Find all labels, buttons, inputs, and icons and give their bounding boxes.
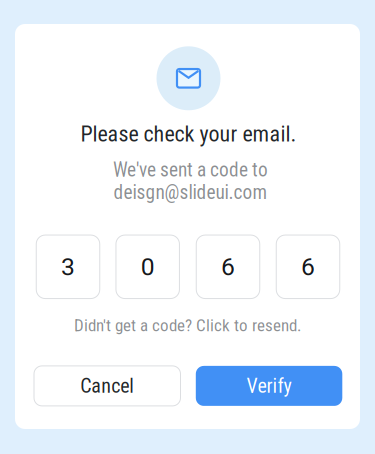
staticText: We've sent a code to bbox=[113, 159, 268, 181]
staticText: deisgn@slideui.com bbox=[113, 181, 267, 204]
staticText: Verify bbox=[247, 374, 292, 398]
button[interactable]: 6 bbox=[196, 235, 260, 299]
button[interactable]: Cancel bbox=[34, 366, 180, 406]
staticText: Cancel bbox=[80, 374, 134, 398]
staticText: Please check your email. bbox=[80, 121, 296, 147]
button[interactable]: 6 bbox=[276, 235, 340, 299]
staticText: 6 bbox=[221, 252, 235, 281]
staticText: 6 bbox=[301, 252, 315, 281]
button[interactable]: 0 bbox=[116, 235, 179, 299]
staticText: 0 bbox=[141, 252, 155, 281]
button[interactable]: 3 bbox=[36, 235, 100, 299]
staticText: Didn't get a code? Click to resend. bbox=[74, 316, 301, 335]
button[interactable]: Verify bbox=[196, 366, 342, 406]
button[interactable]: Didn't get a code? Click to resend. bbox=[74, 316, 301, 335]
staticText: 3 bbox=[61, 252, 75, 281]
